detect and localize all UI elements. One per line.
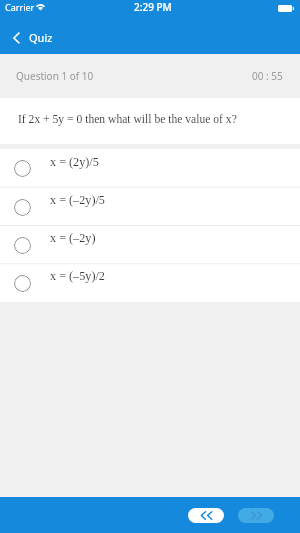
button[interactable]: x = (–2y) — [0, 226, 300, 264]
button[interactable]: x = (–2y)/5 — [0, 188, 300, 226]
staticText: 00 : 55 — [252, 69, 283, 83]
staticText: x = (–2y)/5 — [50, 193, 105, 207]
staticText: x = (–5y)/2 — [50, 269, 105, 283]
staticText: 2:29 PM — [134, 0, 172, 14]
staticText: x = (–2y) — [50, 231, 96, 245]
staticText: Carrier — [5, 1, 35, 13]
staticText: If 2x + 5y = 0 then what will be the val… — [18, 113, 237, 126]
button[interactable]: x = (–5y)/2 — [0, 264, 300, 302]
staticText: Quiz — [29, 30, 53, 45]
button[interactable]: Quiz — [0, 25, 63, 50]
button[interactable]: Next question — [238, 508, 274, 523]
button[interactable]: x = (2y)/5 — [0, 149, 300, 188]
staticText: Question 1 of 10 — [16, 69, 94, 83]
button[interactable]: Previous question — [188, 508, 224, 523]
staticText: x = (2y)/5 — [50, 155, 99, 169]
